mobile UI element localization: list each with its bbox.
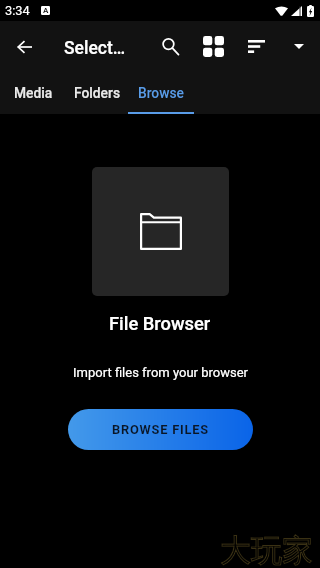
button[interactable]: Back <box>2 24 47 69</box>
button[interactable]: Search <box>148 24 192 69</box>
button[interactable]: Browse <box>128 69 194 114</box>
staticText: Media <box>14 85 53 101</box>
button[interactable]: Media <box>3 69 64 114</box>
button[interactable]: Sort <box>234 24 278 69</box>
staticText: BROWSE FILES <box>112 422 209 437</box>
button[interactable]: Grid view <box>191 24 235 69</box>
button[interactable]: Folders <box>64 69 131 114</box>
staticText: A <box>43 6 49 15</box>
button[interactable]: BROWSE FILES <box>68 409 253 450</box>
staticText: File Browser <box>109 313 211 334</box>
staticText: Browse <box>138 85 184 101</box>
staticText: 大玩家 <box>220 531 313 568</box>
staticText: Select… <box>64 38 126 59</box>
staticText: Folders <box>74 85 121 101</box>
staticText: Import files from your browser <box>73 365 248 380</box>
staticText: 3:34 <box>5 3 30 18</box>
button[interactable]: More options <box>279 24 319 69</box>
